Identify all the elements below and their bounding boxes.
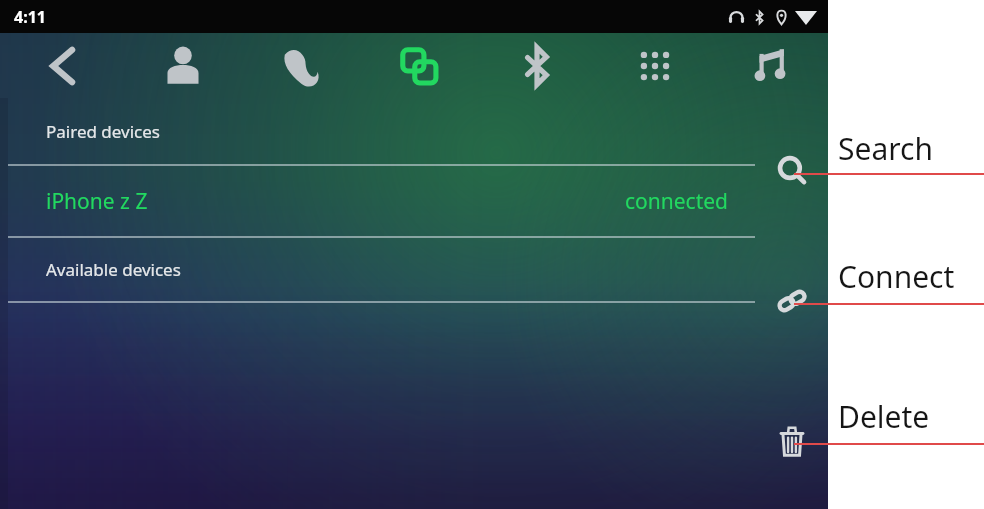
button[interactable]: iPhone z Z	[8, 166, 755, 236]
staticText: iPhone z Z	[46, 187, 148, 216]
button[interactable]: Devices	[360, 33, 478, 98]
staticText: Connect	[838, 256, 955, 297]
staticText: Delete	[838, 396, 930, 437]
button[interactable]: Delete	[766, 415, 818, 467]
button[interactable]: Paired devices	[8, 98, 755, 164]
button[interactable]: Apps	[596, 33, 714, 98]
button[interactable]: Connect	[766, 275, 818, 327]
button[interactable]: Search	[766, 145, 818, 197]
staticText: connected	[625, 187, 729, 216]
staticText: Search	[838, 128, 933, 169]
staticText: Available devices	[46, 258, 181, 281]
button[interactable]: Music	[714, 33, 828, 98]
button[interactable]: Bluetooth	[478, 33, 596, 98]
button[interactable]: Phone	[242, 33, 360, 98]
button[interactable]: Available devices	[8, 238, 755, 301]
staticText: 4:11	[14, 6, 46, 28]
staticText: Paired devices	[46, 120, 160, 143]
button[interactable]: Back	[0, 33, 124, 98]
button[interactable]: Contacts	[124, 33, 242, 98]
